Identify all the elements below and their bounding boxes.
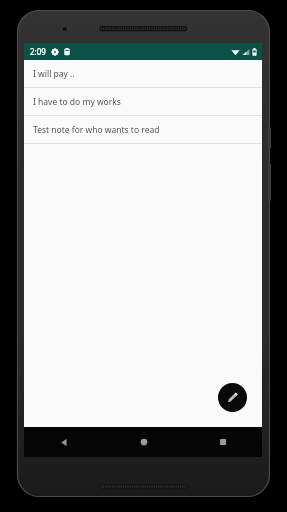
button[interactable]: Recent apps <box>183 427 262 457</box>
button[interactable]: New note <box>218 383 247 412</box>
staticText: Test note for who wants to read <box>33 124 160 136</box>
button[interactable]: Back <box>24 427 104 457</box>
staticText: 2:09 <box>30 46 46 57</box>
button[interactable]: I have to do my works <box>24 88 262 115</box>
button[interactable]: I will pay .. <box>24 60 262 87</box>
staticText: I will pay .. <box>33 68 75 80</box>
button[interactable]: Home <box>104 427 183 457</box>
staticText: I have to do my works <box>33 96 121 108</box>
button[interactable]: Test note for who wants to read <box>24 116 262 143</box>
